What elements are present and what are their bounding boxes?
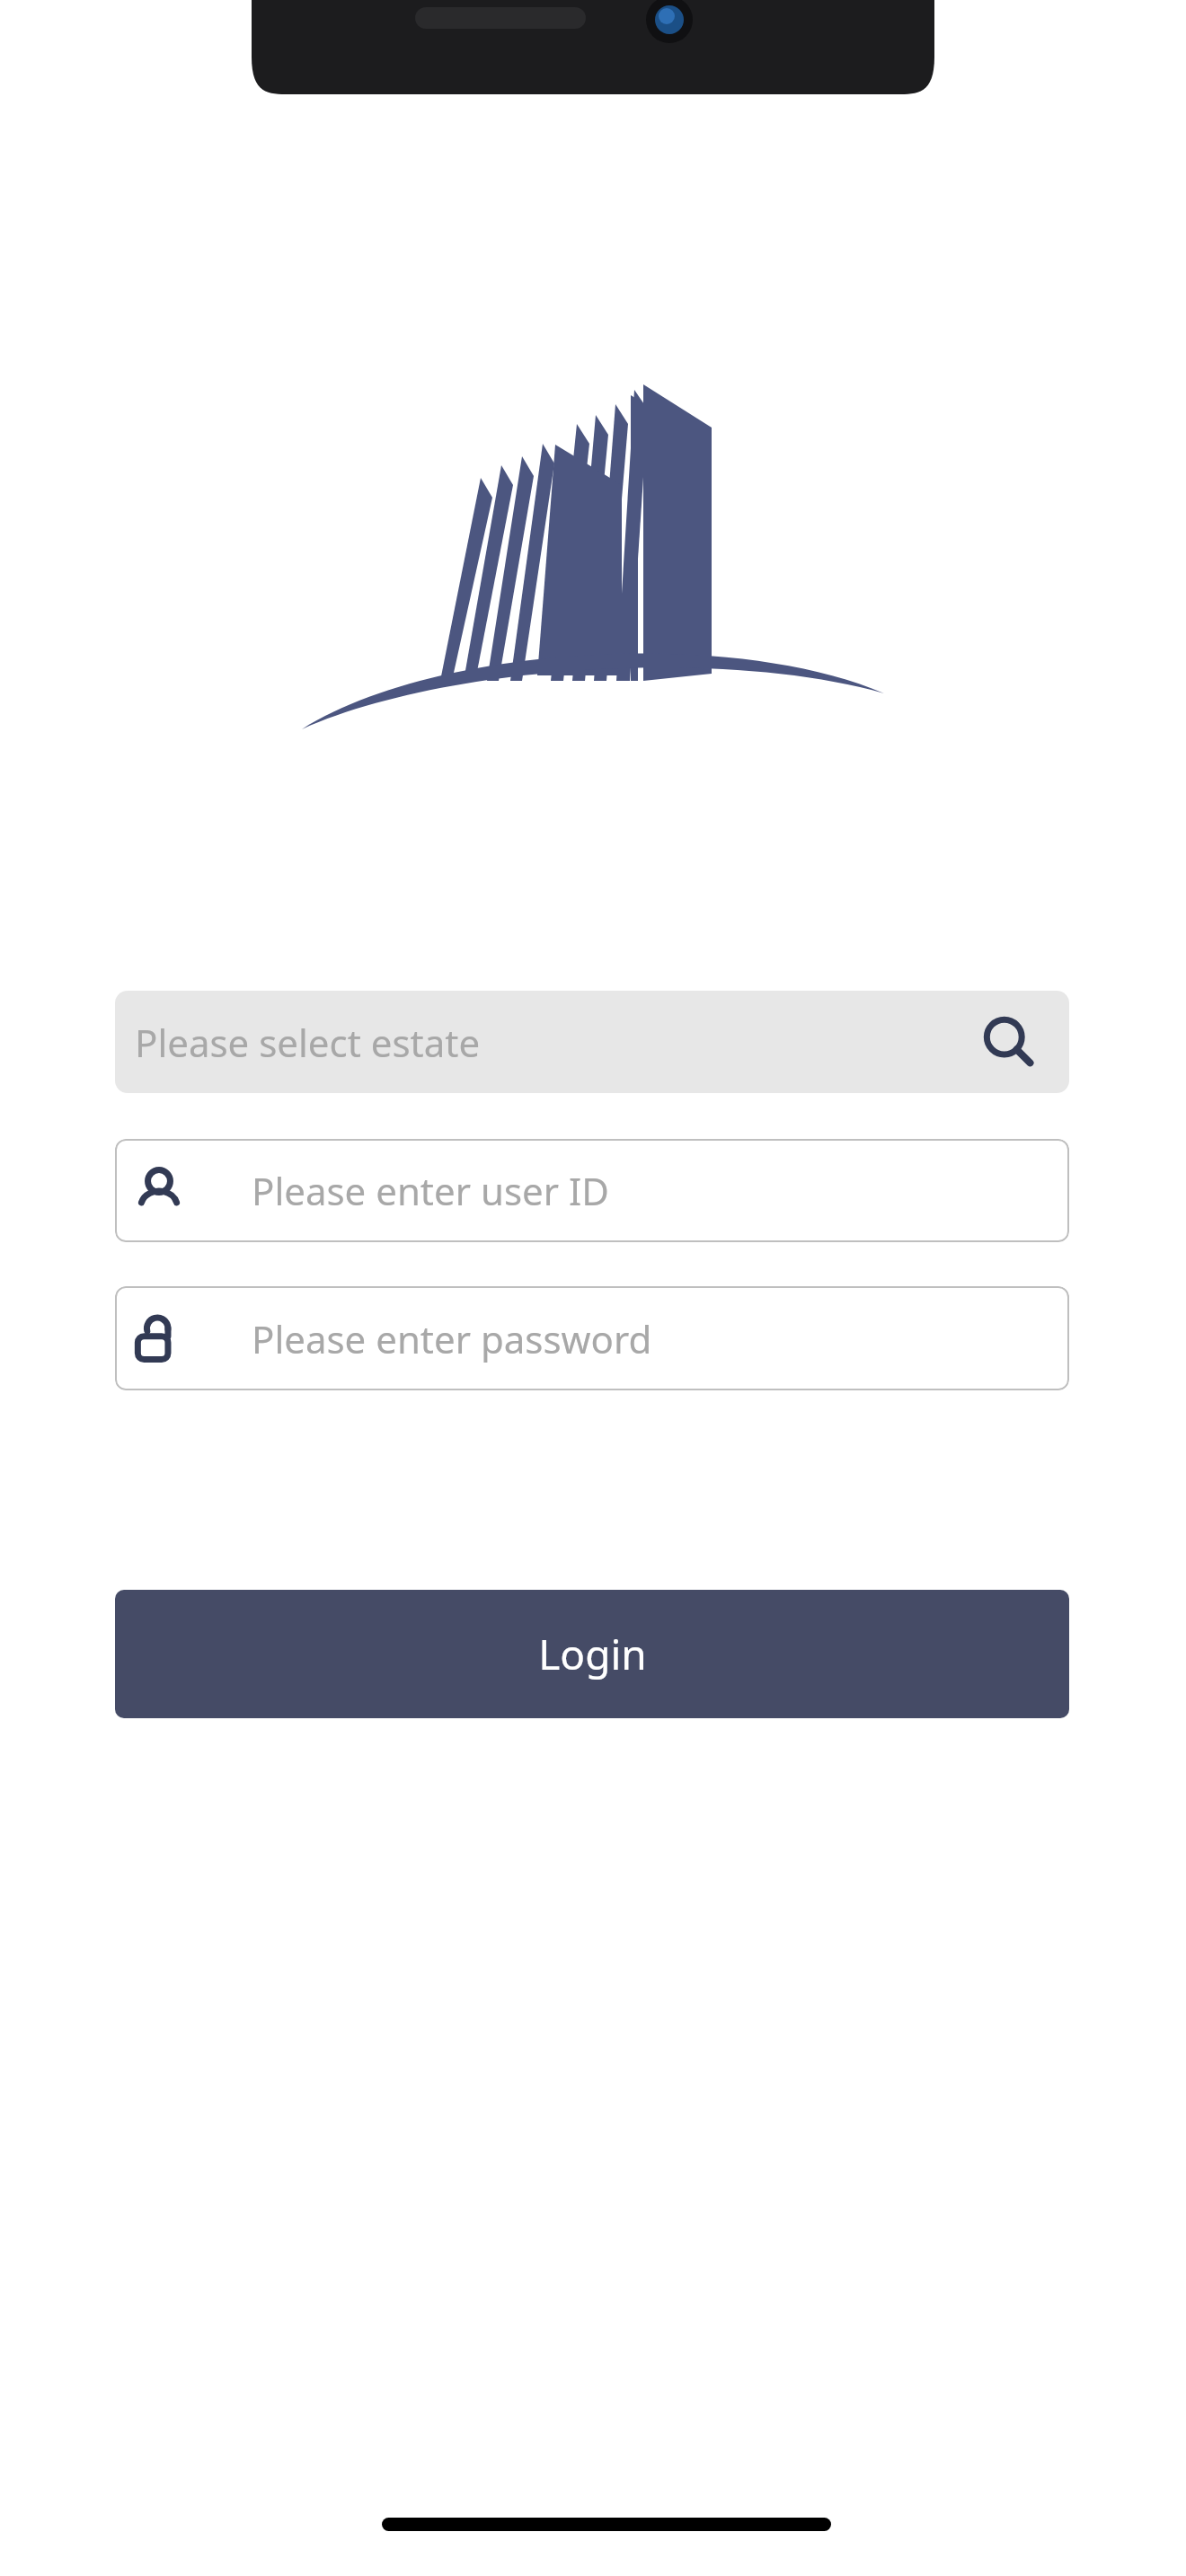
staticText: Please enter user ID (252, 1165, 609, 1216)
staticText: Login (538, 1626, 647, 1682)
other: Search estate (983, 1018, 1031, 1066)
button[interactable]: Please enter password (115, 1286, 1069, 1390)
staticText: Please enter password (252, 1313, 652, 1364)
button[interactable]: Please enter user ID (115, 1139, 1069, 1242)
staticText: Please select estate (135, 1017, 481, 1068)
button[interactable]: Please select estate (115, 991, 1069, 1093)
button[interactable]: Login (115, 1590, 1069, 1718)
